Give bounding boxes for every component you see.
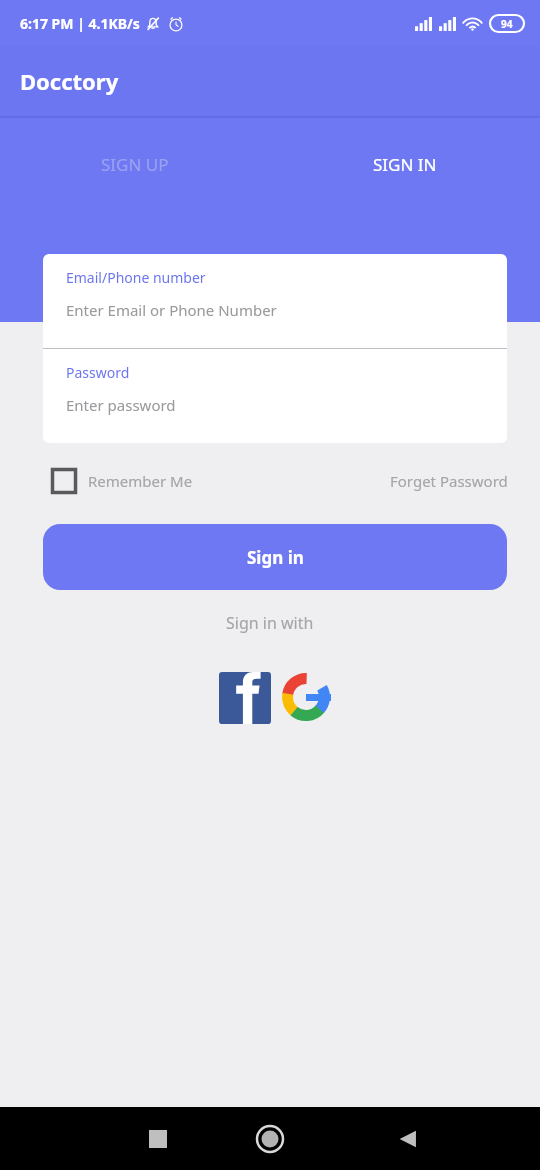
staticText: 6:17 PM | 4.1KB/s (20, 14, 140, 33)
staticText: SIGN IN (373, 153, 437, 176)
staticText: 94 (501, 17, 513, 31)
staticText: Forget Password (390, 471, 508, 491)
button[interactable]: Sign in with Facebook (219, 672, 271, 724)
staticText: Sign in (247, 546, 304, 569)
staticText: Enter password (66, 395, 176, 415)
staticText: Remember Me (88, 471, 193, 491)
staticText: Enter Email or Phone Number (66, 300, 277, 320)
button[interactable]: Email/Phone number (43, 254, 507, 348)
button[interactable]: Sign in (43, 524, 507, 590)
staticText: Email/Phone number (66, 268, 206, 287)
button[interactable]: Remember Me (50, 467, 199, 495)
button[interactable]: Sign in with Google (281, 672, 331, 722)
button[interactable]: Back (382, 1113, 434, 1165)
staticText: Password (66, 363, 130, 382)
staticText: Sign in with (226, 612, 314, 634)
staticText: Docctory (20, 66, 119, 96)
button[interactable]: SIGN UP (0, 118, 270, 210)
button[interactable]: Forget Password (390, 471, 508, 491)
button[interactable]: SIGN IN (270, 118, 540, 210)
staticText: SIGN UP (101, 153, 169, 176)
button[interactable]: Recent apps (132, 1113, 184, 1165)
button[interactable]: Home (244, 1113, 296, 1165)
button[interactable]: Password (43, 349, 507, 443)
